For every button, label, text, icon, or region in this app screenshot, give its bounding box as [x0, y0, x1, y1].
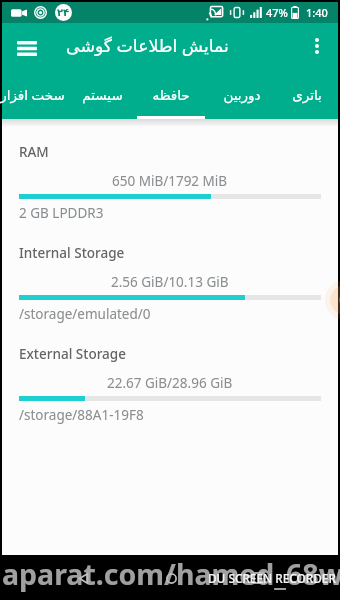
- staticText: 22.67 GiB/28.96 GiB: [107, 374, 233, 392]
- button[interactable]: More options: [296, 25, 338, 67]
- staticText: /storage/88A1-19F8: [19, 406, 144, 424]
- staticText: External Storage: [19, 345, 126, 363]
- button[interactable]: سیستم: [68, 69, 136, 119]
- staticText: 2.56 GiB/10.13 GiB: [111, 273, 229, 291]
- staticText: 2 GB LPDDR3: [19, 204, 104, 222]
- staticText: Internal Storage: [19, 244, 125, 262]
- staticText: سیستم: [82, 87, 123, 103]
- staticText: aparat.com/hamed_68w: [2, 555, 340, 594]
- staticText: سخت افزار: [0, 86, 65, 104]
- staticText: DU SCREEN RECORDER: [208, 570, 336, 586]
- staticText: 650 MiB/1792 MiB: [112, 172, 228, 190]
- staticText: حافظه: [152, 87, 190, 103]
- staticText: 47%: [266, 5, 288, 20]
- button[interactable]: دوربین: [208, 69, 276, 119]
- button[interactable]: سخت افزار: [0, 69, 66, 119]
- button[interactable]: Recents: [237, 556, 281, 600]
- staticText: ۲۴: [57, 7, 70, 19]
- button[interactable]: باتری: [273, 69, 340, 119]
- button[interactable]: حافظه: [137, 69, 205, 119]
- button[interactable]: Menu: [5, 27, 49, 69]
- staticText: RAM: [19, 143, 49, 161]
- staticText: /storage/emulated/0: [19, 305, 151, 323]
- button[interactable]: Back: [61, 556, 105, 600]
- staticText: دوربین: [223, 87, 261, 103]
- staticText: باتری: [292, 87, 322, 103]
- button[interactable]: Home: [149, 556, 193, 600]
- staticText: نمایش اطلاعات گوشی: [66, 34, 229, 58]
- staticText: 1:40: [306, 5, 328, 20]
